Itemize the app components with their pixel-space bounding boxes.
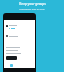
staticText: organised and in sync bbox=[19, 7, 45, 10]
staticText: Keep your groups bbox=[19, 2, 46, 6]
button[interactable] bbox=[4, 33, 35, 39]
button[interactable] bbox=[6, 56, 17, 60]
button[interactable] bbox=[4, 24, 35, 33]
